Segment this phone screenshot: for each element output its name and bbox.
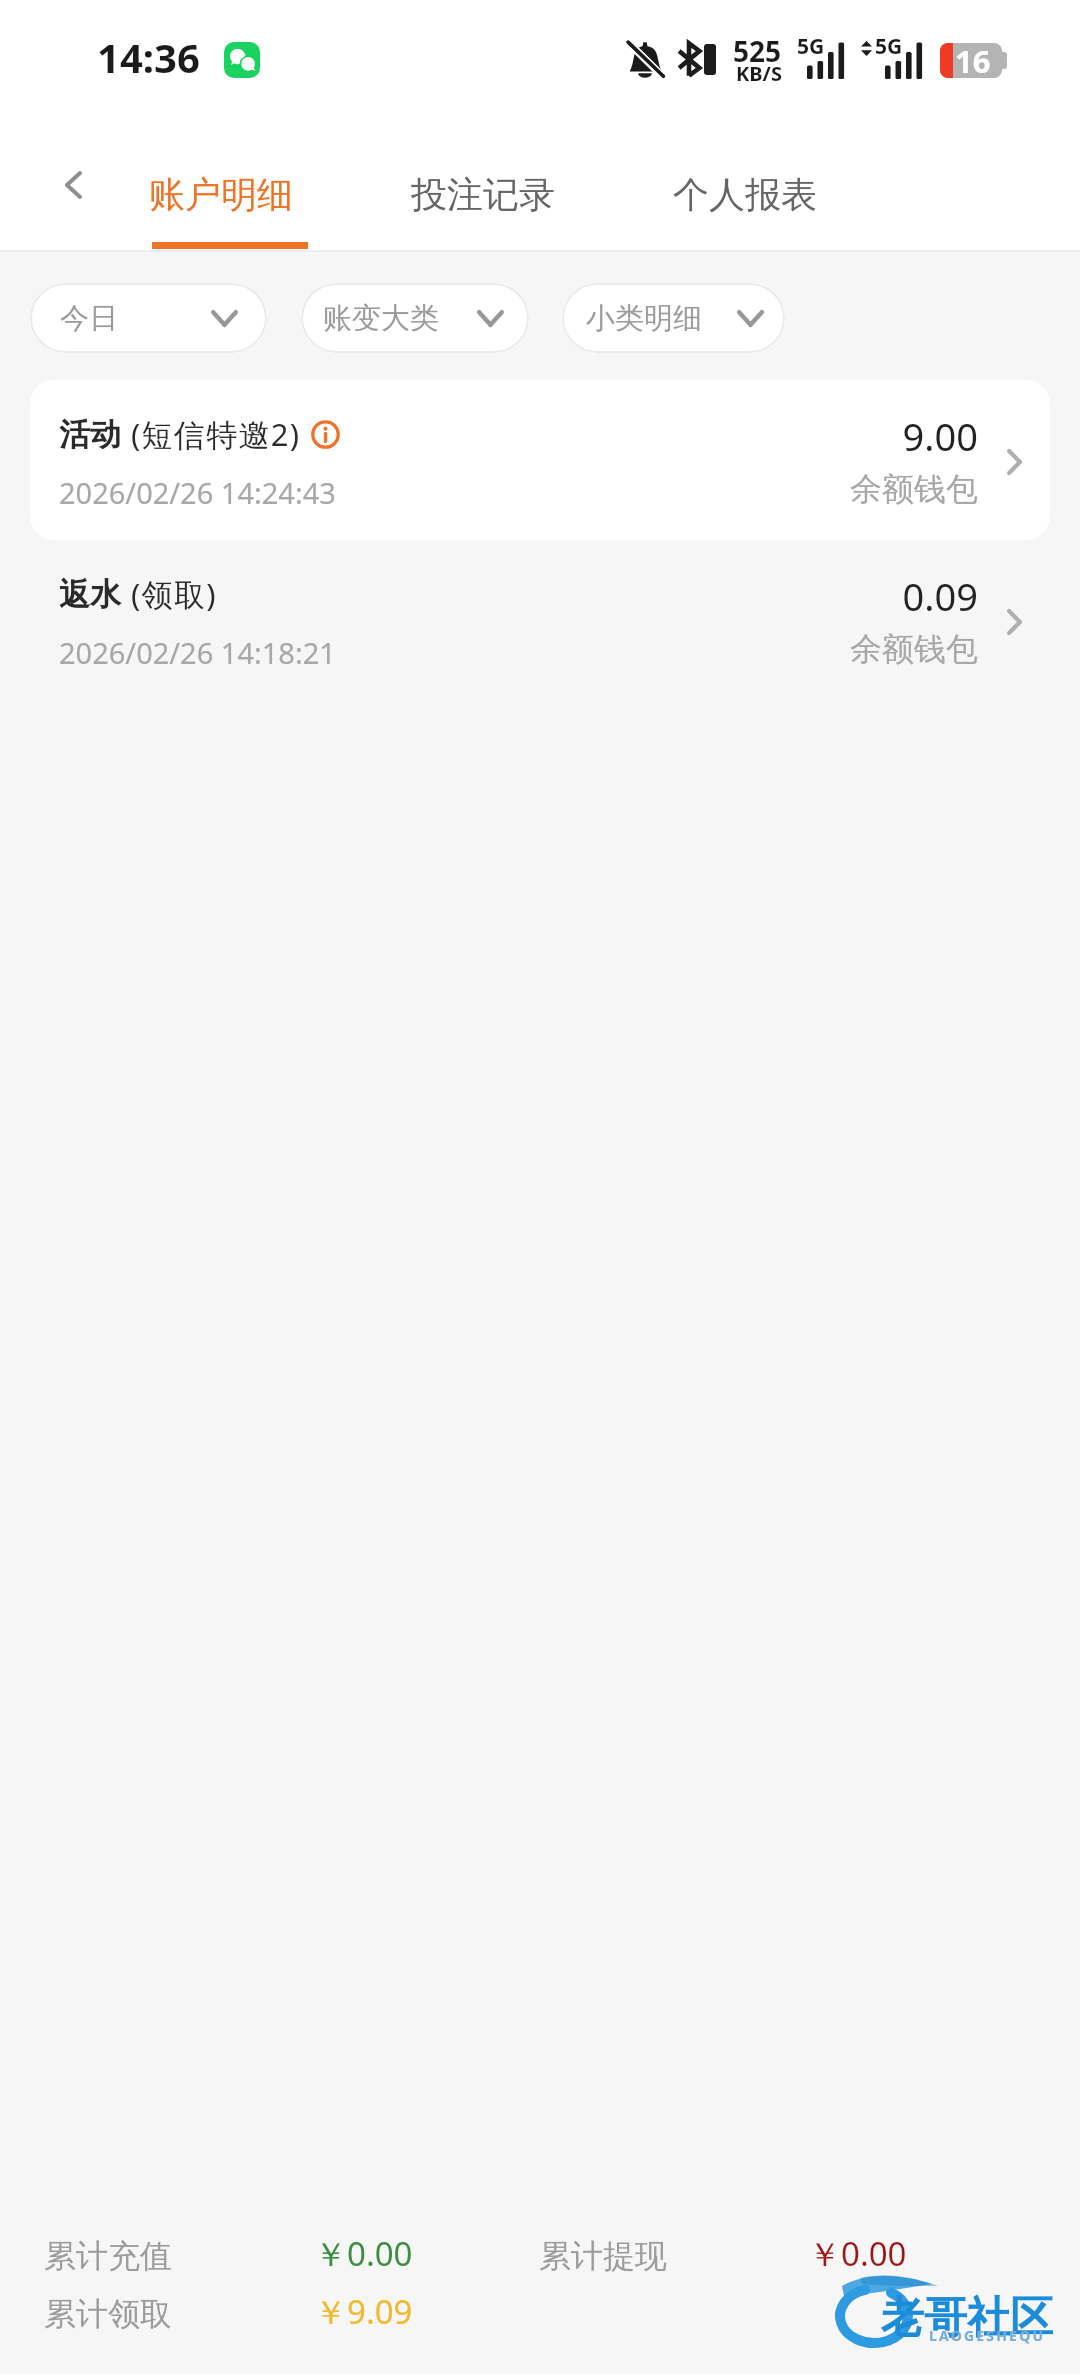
staticText: ￥0.00 [808,2231,907,2276]
staticText: ￥9.09 [314,2289,413,2334]
button[interactable]: Back [47,159,99,211]
staticText: 老哥社区 [881,2291,1053,2345]
staticText: 2026/02/26 14:24:43 [59,473,336,512]
staticText: 账户明细 [149,172,293,217]
staticText: 525 [733,32,782,70]
staticText: 投注记录 [411,172,555,217]
staticText: 个人报表 [673,172,817,217]
staticText: (短信特邀2) [131,413,301,455]
staticText: ￥0.00 [314,2231,413,2276]
button[interactable]: 活动 [30,380,1050,540]
staticText: 活动 [59,415,121,454]
staticText: 2026/02/26 14:18:21 [59,633,336,672]
button[interactable]: 个人报表 [640,146,850,250]
button[interactable]: 小类明细 [562,283,785,353]
button[interactable]: 投注记录 [378,146,588,250]
staticText: LAOGESHEQU [929,2326,1046,2345]
staticText: 累计充值 [44,2236,172,2276]
button[interactable]: 账变大类 [301,283,529,353]
staticText: 5G [875,32,903,61]
staticText: 5G [797,32,825,61]
staticText: 14:36 [97,30,200,84]
staticText: 累计领取 [44,2294,172,2334]
staticText: 累计提现 [539,2236,667,2276]
staticText: (领取) [131,573,217,615]
button[interactable]: 账户明细 [116,146,326,250]
button[interactable]: 返水 [30,540,1050,700]
staticText: 余额钱包 [630,629,978,669]
staticText: 账变大类 [323,300,439,337]
staticText: 0.09 [630,570,978,622]
staticText: 小类明细 [586,300,702,337]
staticText: 16 [955,43,991,75]
staticText: KB/S [736,60,782,87]
staticText: 返水 [59,575,121,614]
staticText: 9.00 [630,410,978,462]
button[interactable]: 今日 [30,283,267,353]
staticText: 今日 [60,300,118,337]
staticText: 余额钱包 [630,469,978,509]
